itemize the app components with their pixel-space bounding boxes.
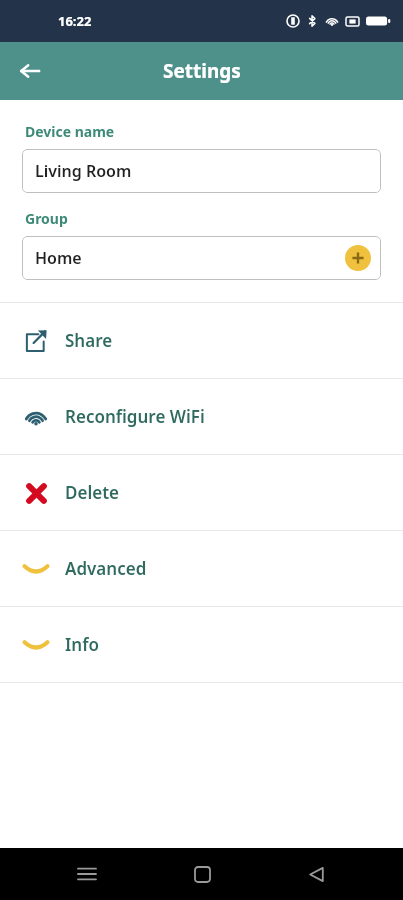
staticText: 16:22 <box>58 12 92 30</box>
button[interactable]: Home <box>22 236 381 280</box>
button[interactable]: Delete <box>0 455 403 530</box>
staticText: Device name <box>25 122 115 141</box>
button[interactable]: Reconfigure WiFi <box>0 379 403 454</box>
staticText: Advanced <box>65 557 147 580</box>
staticText: Info <box>65 633 99 656</box>
button[interactable]: Back <box>8 49 52 93</box>
button[interactable]: Living Room <box>22 149 381 193</box>
button[interactable]: Info <box>0 607 403 682</box>
staticText: Settings <box>163 58 241 84</box>
button[interactable]: Advanced <box>0 531 403 606</box>
staticText: Living Room <box>35 160 132 182</box>
staticText: Group <box>25 209 68 228</box>
staticText: Delete <box>65 481 119 504</box>
staticText: Home <box>35 247 82 269</box>
staticText: Share <box>65 329 113 352</box>
button[interactable]: Recent apps <box>60 848 114 900</box>
button[interactable]: Share <box>0 303 403 378</box>
button[interactable]: Home <box>175 848 229 900</box>
button[interactable]: Add group <box>345 245 371 271</box>
button[interactable]: Back <box>289 848 343 900</box>
staticText: Reconfigure WiFi <box>65 405 205 428</box>
